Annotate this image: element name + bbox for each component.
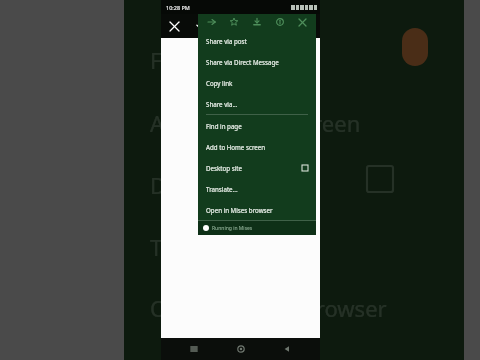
button[interactable]: Back: [274, 338, 300, 360]
button[interactable]: Translate...: [198, 178, 316, 199]
button[interactable]: Add to Home screen: [198, 136, 316, 157]
button[interactable]: Page info: [271, 14, 289, 30]
staticText: Open in Mises browser: [206, 206, 308, 214]
staticText: Desktop site: [150, 170, 278, 200]
button[interactable]: Forward: [203, 14, 221, 30]
button[interactable]: Share via Direct Message: [198, 51, 316, 72]
button[interactable]: Show more: [187, 14, 213, 38]
button[interactable]: Find in page: [198, 115, 316, 136]
staticText: Translate...: [150, 232, 263, 262]
button[interactable]: Running in Mises: [198, 221, 316, 235]
button[interactable]: Bookmark: [225, 14, 243, 30]
button[interactable]: Download: [248, 14, 266, 30]
button[interactable]: Share via post: [198, 30, 316, 51]
staticText: Find in page: [206, 122, 308, 130]
button[interactable]: Share via...: [198, 93, 316, 114]
staticText: Translate...: [206, 185, 308, 193]
staticText: 10:28 PM: [166, 4, 190, 11]
button[interactable]: Desktop site: [198, 157, 316, 178]
button[interactable]: Recents: [181, 338, 207, 360]
staticText: Desktop site: [206, 164, 302, 172]
button[interactable]: Copy link: [198, 72, 316, 93]
staticText: Share via Direct Message: [206, 58, 308, 66]
button[interactable]: Close tab: [293, 14, 311, 30]
button[interactable]: Close: [161, 14, 187, 38]
button[interactable]: Open in Mises browser: [198, 199, 316, 220]
staticText: Fi: [150, 45, 168, 75]
staticText: Open in Mises browser: [150, 293, 387, 323]
button[interactable]: Home: [228, 338, 254, 360]
staticText: Add to Home screen: [150, 108, 361, 138]
staticText: Add to Home screen: [206, 143, 308, 151]
staticText: Copy link: [206, 79, 308, 87]
staticText: Share via...: [206, 100, 308, 108]
staticText: Running in Mises: [212, 225, 253, 232]
staticText: Share via post: [206, 37, 308, 45]
